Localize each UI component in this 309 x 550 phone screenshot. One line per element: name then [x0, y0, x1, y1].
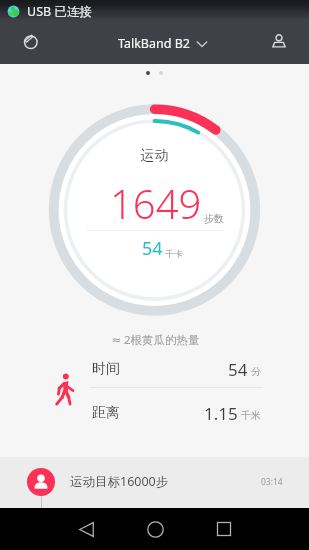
staticText: 03:14	[261, 476, 283, 488]
staticText: 1.15	[204, 402, 238, 424]
button[interactable]: Device	[10, 21, 50, 61]
staticText: 时间	[92, 360, 120, 378]
staticText: 54	[142, 236, 163, 261]
button[interactable]: Account	[259, 21, 299, 61]
staticText: USB 已连接	[27, 3, 92, 20]
staticText: 距离	[92, 404, 120, 422]
button[interactable]: Home	[137, 511, 173, 547]
staticText: 步数	[204, 212, 224, 225]
staticText: 运动目标16000步	[70, 473, 169, 490]
button[interactable]: 运动目标16000步	[0, 457, 309, 508]
staticText: 1649	[110, 176, 202, 230]
staticText: 运动	[0, 147, 309, 165]
button[interactable]: Recents	[206, 511, 242, 547]
button[interactable]: 距离	[92, 402, 261, 424]
staticText: TalkBand B2	[118, 35, 190, 52]
staticText: ≈ 2根黄瓜的热量	[1, 332, 309, 348]
button[interactable]: TalkBand B2	[118, 35, 208, 52]
button[interactable]: 时间	[92, 358, 261, 380]
staticText: 千卡	[165, 248, 183, 259]
staticText: 千米	[241, 409, 261, 422]
staticText: 分	[251, 365, 261, 378]
button[interactable]: Back	[68, 511, 104, 547]
staticText: 54	[228, 358, 248, 380]
